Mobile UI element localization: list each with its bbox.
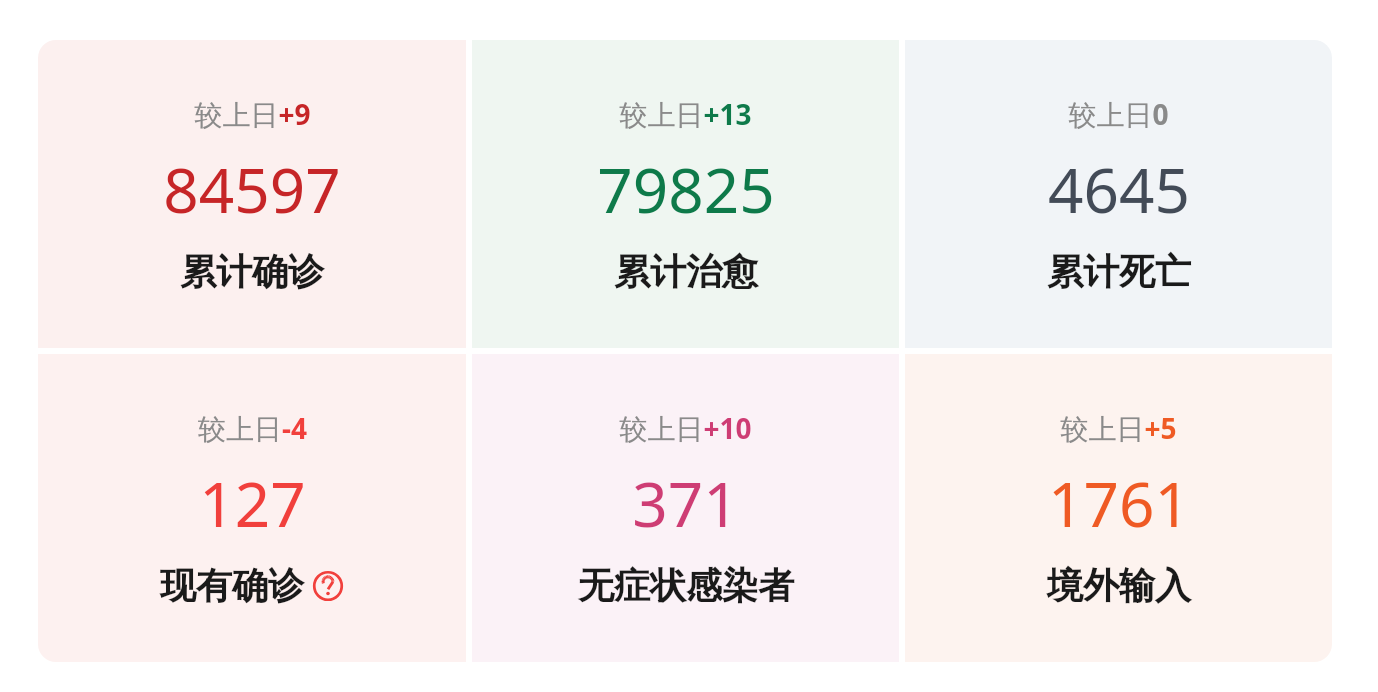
staticText: 较上日+10 (619, 409, 752, 447)
button[interactable]: 较上日-4 (38, 354, 466, 662)
staticText: 累计确诊 (180, 249, 324, 294)
staticText: 较上日+9 (194, 95, 311, 133)
staticText: 79825 (597, 147, 775, 231)
button[interactable]: 现有确诊说明 (312, 570, 344, 602)
staticText: 累计死亡 (1047, 249, 1191, 294)
staticText: 4645 (1048, 147, 1190, 231)
button[interactable]: 较上日+5 (905, 354, 1332, 662)
staticText: 较上日0 (1068, 95, 1169, 133)
staticText: 境外输入 (1047, 563, 1191, 608)
staticText: 现有确诊 (160, 563, 304, 608)
staticText: 较上日+5 (1060, 409, 1177, 447)
staticText: 较上日+13 (619, 95, 752, 133)
staticText: 1761 (1048, 461, 1190, 545)
button[interactable]: 较上日+13 (472, 40, 899, 348)
button[interactable]: 较上日0 (905, 40, 1332, 348)
staticText: 371 (632, 461, 739, 545)
staticText: 累计治愈 (614, 249, 758, 294)
staticText: 127 (199, 461, 306, 545)
button[interactable]: 较上日+10 (472, 354, 899, 662)
staticText: 无症状感染者 (578, 563, 794, 608)
staticText: 较上日-4 (198, 409, 307, 447)
staticText: 84597 (163, 147, 341, 231)
button[interactable]: 较上日+9 (38, 40, 466, 348)
